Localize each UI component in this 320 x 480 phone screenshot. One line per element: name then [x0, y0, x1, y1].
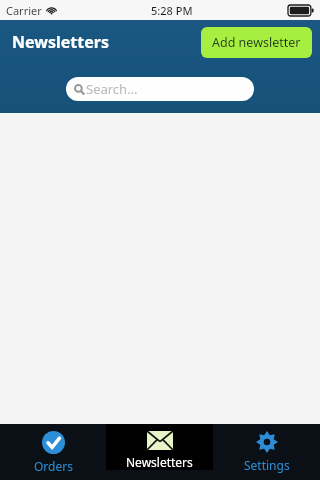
- other: Newsletters: [147, 431, 173, 450]
- button[interactable]: Orders: [0, 424, 106, 474]
- staticText: Search…: [86, 80, 138, 98]
- staticText: Settings: [244, 457, 290, 473]
- staticText: Newsletters: [12, 31, 109, 53]
- other: Settings: [256, 431, 278, 453]
- other: Orders: [42, 431, 65, 454]
- button[interactable]: Add newsletter: [201, 27, 312, 58]
- staticText: 5:28 PM: [151, 3, 193, 18]
- staticText: Newsletters: [126, 454, 193, 470]
- button[interactable]: Newsletters: [106, 424, 213, 470]
- button[interactable]: Search…: [66, 77, 254, 101]
- staticText: Carrier: [6, 3, 42, 18]
- staticText: Orders: [34, 458, 73, 474]
- staticText: Add newsletter: [212, 34, 301, 51]
- button[interactable]: Settings: [213, 424, 320, 473]
